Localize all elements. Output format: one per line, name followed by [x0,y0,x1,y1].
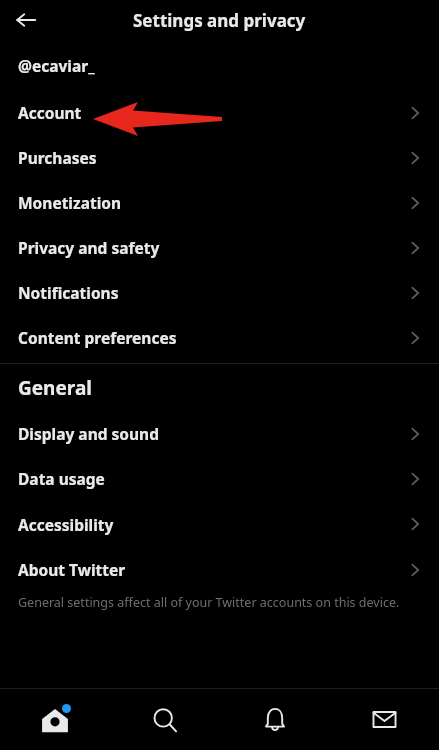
button[interactable]: Privacy and safety [0,225,439,270]
button[interactable]: Search [110,689,220,750]
staticText: About Twitter [18,559,126,580]
staticText: General [18,375,92,401]
button[interactable]: About Twitter [0,547,439,592]
button[interactable]: Monetization [0,180,439,225]
staticText: Account [18,102,82,123]
staticText: Privacy and safety [18,237,160,258]
button[interactable]: Back [6,0,46,40]
staticText: Data usage [18,468,105,489]
button[interactable]: Content preferences [0,315,439,360]
button[interactable]: Notifications [0,270,439,315]
button[interactable]: Home [0,689,110,750]
button[interactable]: Display and sound [0,411,439,456]
staticText: Content preferences [18,327,177,348]
staticText: Accessibility [18,514,114,535]
staticText: General settings affect all of your Twit… [18,594,400,611]
button[interactable]: Notifications [220,689,330,750]
button[interactable]: Accessibility [0,501,439,547]
staticText: Notifications [18,282,119,303]
staticText: Purchases [18,147,97,168]
staticText: @ecaviar_ [18,55,95,76]
button[interactable]: Data usage [0,456,439,501]
staticText: Monetization [18,192,122,213]
staticText: Display and sound [18,423,159,444]
button[interactable]: Purchases [0,135,439,180]
button[interactable]: Messages [330,689,439,750]
button[interactable]: Account [0,90,439,135]
staticText: Settings and privacy [133,9,306,32]
